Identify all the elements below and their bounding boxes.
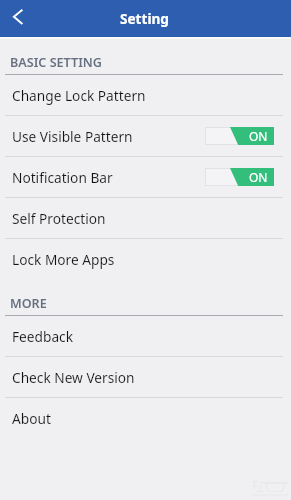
button[interactable]: Lock More Apps <box>0 239 291 280</box>
button[interactable]: Self Protection <box>0 198 291 239</box>
button[interactable]: Feedback <box>0 316 291 357</box>
button[interactable]: Notification Bar <box>0 157 291 198</box>
staticText: BASIC SETTING <box>10 54 102 71</box>
button[interactable]: Toggle on <box>205 168 274 186</box>
button[interactable]: Check New Version <box>0 357 291 398</box>
staticText: Setting <box>120 9 169 28</box>
button[interactable]: About <box>0 398 291 439</box>
staticText: ON <box>249 169 268 185</box>
staticText: Feedback <box>12 327 73 346</box>
button[interactable]: Change Lock Pattern <box>0 75 291 116</box>
staticText: Change Lock Pattern <box>12 86 146 105</box>
staticText: Check New Version <box>12 368 135 387</box>
staticText: MORE <box>10 295 47 312</box>
staticText: Lock More Apps <box>12 250 115 269</box>
staticText: About <box>12 409 51 428</box>
staticText: ON <box>249 128 268 144</box>
staticText: Notification Bar <box>12 168 113 187</box>
button[interactable]: Back <box>0 0 37 37</box>
staticText: Self Protection <box>12 209 106 228</box>
button[interactable]: Toggle on <box>205 127 274 145</box>
staticText: Use Visible Pattern <box>12 127 133 146</box>
button[interactable]: Use Visible Pattern <box>0 116 291 157</box>
